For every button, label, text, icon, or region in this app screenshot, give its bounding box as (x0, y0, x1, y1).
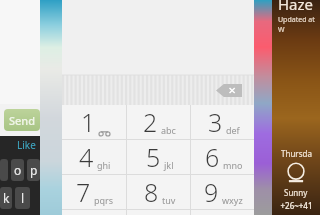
button[interactable]: o (11, 159, 24, 181)
button[interactable]: 1 (62, 105, 126, 139)
button[interactable]: 2 (127, 105, 190, 139)
staticText: 3 (208, 105, 223, 139)
staticText: Haze (278, 0, 314, 14)
button[interactable]: k (0, 187, 12, 209)
staticText: Like (17, 138, 36, 152)
staticText: l (21, 190, 25, 206)
staticText: wxyz (222, 194, 243, 206)
button[interactable]: 5 (127, 140, 190, 174)
staticText: 1 (81, 105, 96, 139)
staticText: k (3, 190, 10, 206)
staticText: 8 (144, 175, 159, 209)
staticText: 7 (76, 175, 91, 209)
staticText: def (226, 124, 240, 136)
staticText: 5 (146, 140, 161, 174)
staticText: Updated at W (278, 15, 320, 35)
button[interactable]: 9 (191, 175, 254, 209)
staticText: Thursda (281, 148, 312, 159)
button[interactable]: 6 (191, 140, 254, 174)
staticText: 2 (143, 105, 158, 139)
button[interactable] (0, 159, 8, 181)
staticText: ghi (97, 159, 111, 171)
staticText: tuv (162, 194, 176, 206)
button[interactable]: Send (4, 109, 40, 131)
button[interactable]: p (27, 159, 40, 181)
staticText: Send (9, 113, 36, 128)
staticText: 9 (204, 175, 219, 209)
staticText: abc (161, 124, 176, 136)
staticText: pqrs (94, 194, 114, 206)
button[interactable]: 4 (62, 140, 126, 174)
staticText: 4 (79, 140, 94, 174)
button[interactable]: Backspace (216, 84, 242, 97)
staticText: jkl (164, 159, 174, 171)
button[interactable]: 3 (191, 105, 254, 139)
staticText: p (30, 162, 38, 178)
button[interactable]: l (15, 187, 30, 209)
staticText: o (14, 162, 22, 178)
button[interactable]: 8 (127, 175, 190, 209)
staticText: mno (223, 159, 243, 171)
staticText: +26~+41 (280, 200, 313, 211)
button[interactable]: 7 (62, 175, 126, 209)
staticText: 6 (205, 140, 220, 174)
staticText: Sunny (284, 187, 308, 198)
